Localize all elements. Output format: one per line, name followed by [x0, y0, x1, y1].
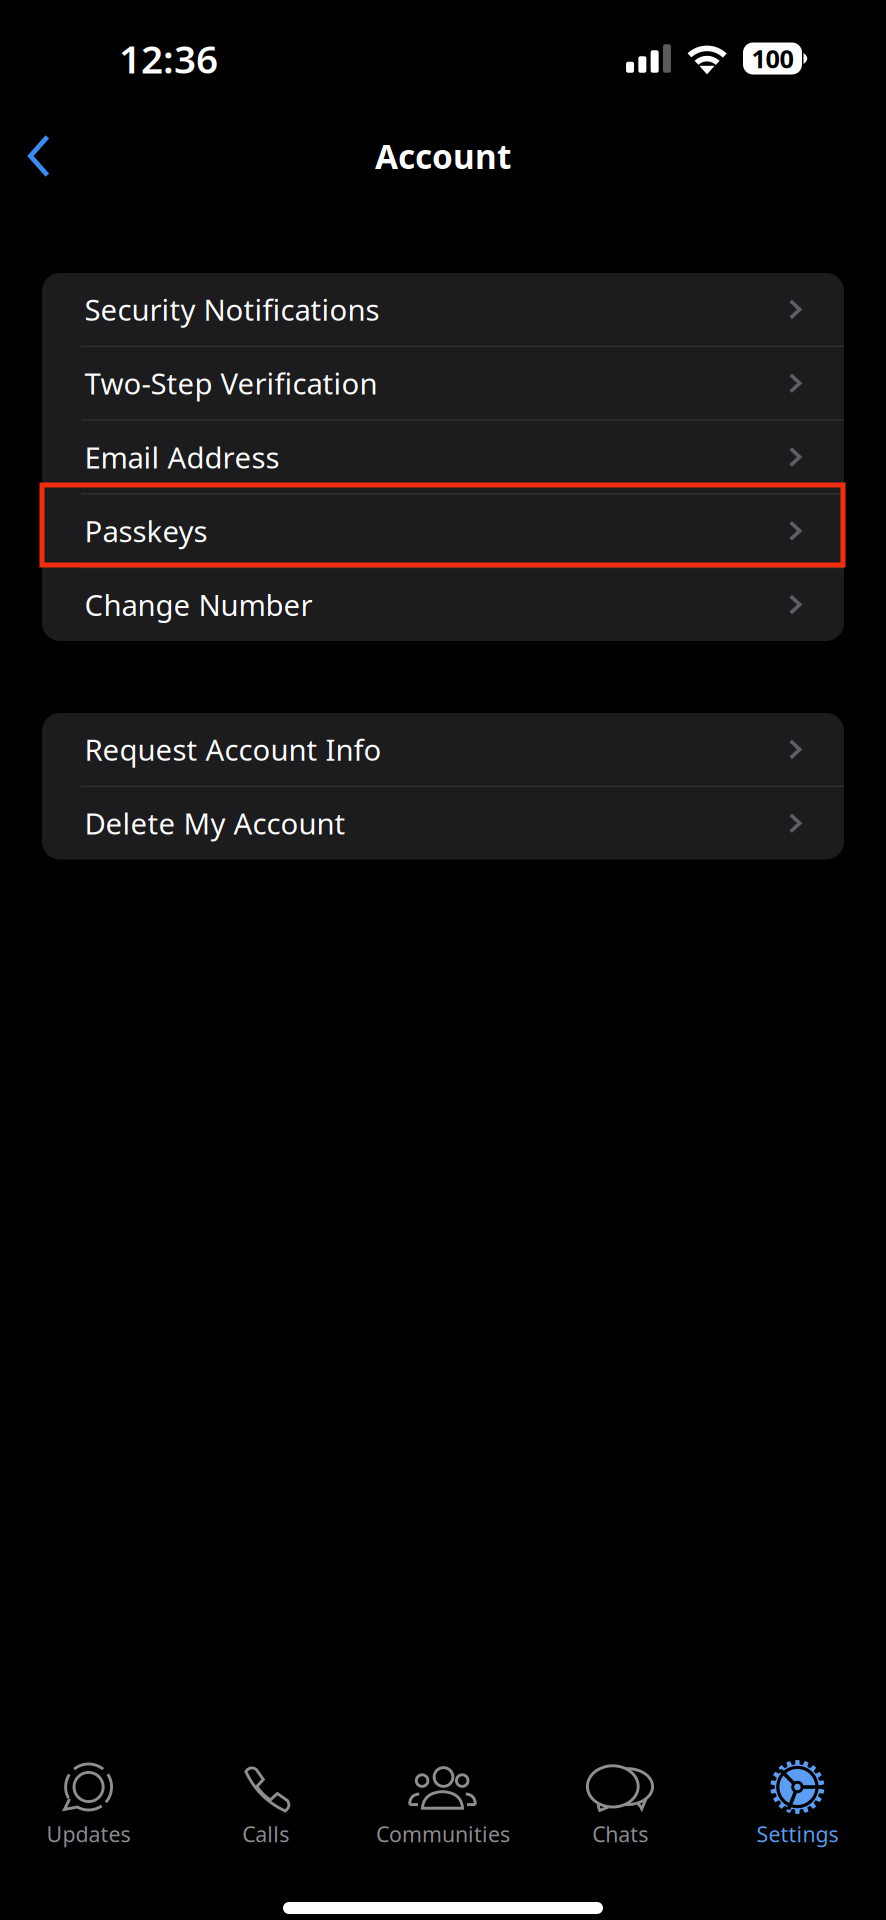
- staticText: 12:36: [119, 33, 218, 84]
- staticText: Communities: [376, 1820, 510, 1848]
- button[interactable]: Passkeys: [42, 494, 844, 567]
- button[interactable]: Email Address: [42, 421, 844, 493]
- staticText: Passkeys: [84, 511, 207, 550]
- button[interactable]: Settings: [709, 1762, 886, 1846]
- button[interactable]: Change Number: [42, 568, 844, 641]
- button[interactable]: Communities: [354, 1762, 532, 1846]
- staticText: Settings: [756, 1820, 838, 1848]
- staticText: Email Address: [84, 437, 279, 476]
- staticText: Delete My Account: [84, 804, 345, 843]
- button[interactable]: Calls: [177, 1762, 354, 1846]
- button[interactable]: Security Notifications: [42, 273, 844, 346]
- button[interactable]: Chats: [532, 1762, 709, 1846]
- staticText: Chats: [592, 1820, 648, 1848]
- button[interactable]: Two-Step Verification: [42, 347, 844, 420]
- staticText: Calls: [242, 1820, 289, 1848]
- staticText: Security Notifications: [84, 290, 379, 329]
- button[interactable]: Request Account Info: [42, 713, 844, 786]
- staticText: Two-Step Verification: [84, 364, 377, 403]
- staticText: Change Number: [84, 585, 312, 624]
- button[interactable]: Updates: [0, 1762, 177, 1846]
- button[interactable]: Delete My Account: [42, 787, 844, 860]
- staticText: Account: [375, 134, 511, 178]
- button[interactable]: Back: [0, 120, 70, 191]
- staticText: Updates: [47, 1820, 131, 1848]
- staticText: Request Account Info: [84, 730, 381, 769]
- staticText: 100: [751, 42, 793, 75]
